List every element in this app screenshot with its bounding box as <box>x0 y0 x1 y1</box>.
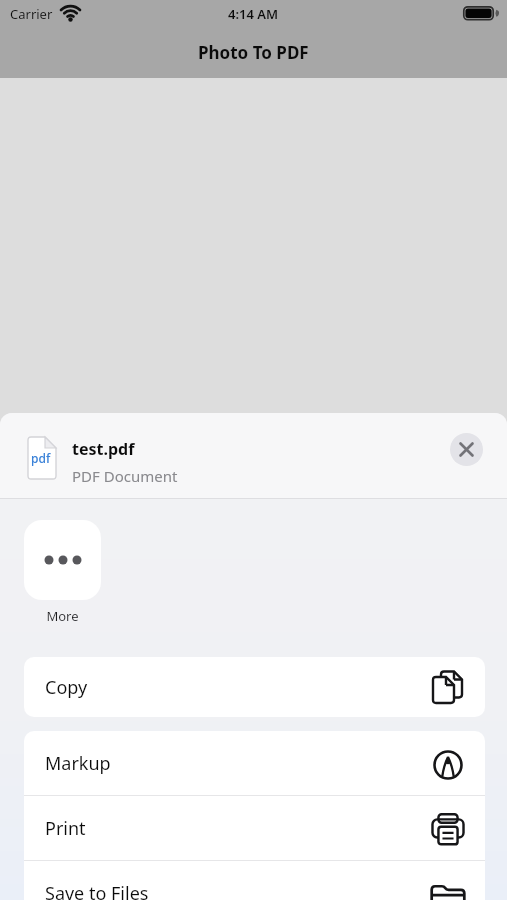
staticText: pdf <box>31 450 51 466</box>
button[interactable]: Markup <box>24 731 485 795</box>
staticText: Print <box>45 816 86 841</box>
staticText: PDF Document <box>72 466 178 486</box>
button[interactable]: Print <box>24 796 485 860</box>
staticText: Markup <box>45 751 111 776</box>
staticText: Copy <box>45 675 88 700</box>
staticText: Carrier <box>10 5 53 23</box>
button[interactable] <box>24 520 101 600</box>
staticText: Photo To PDF <box>198 41 309 64</box>
button[interactable]: Save to Files <box>24 861 485 900</box>
staticText: Save to Files <box>45 881 149 900</box>
staticText: 4:14 AM <box>228 5 279 23</box>
button[interactable] <box>450 433 483 466</box>
staticText: More <box>46 607 79 625</box>
staticText: test.pdf <box>72 438 135 460</box>
button[interactable]: Copy <box>24 657 485 717</box>
